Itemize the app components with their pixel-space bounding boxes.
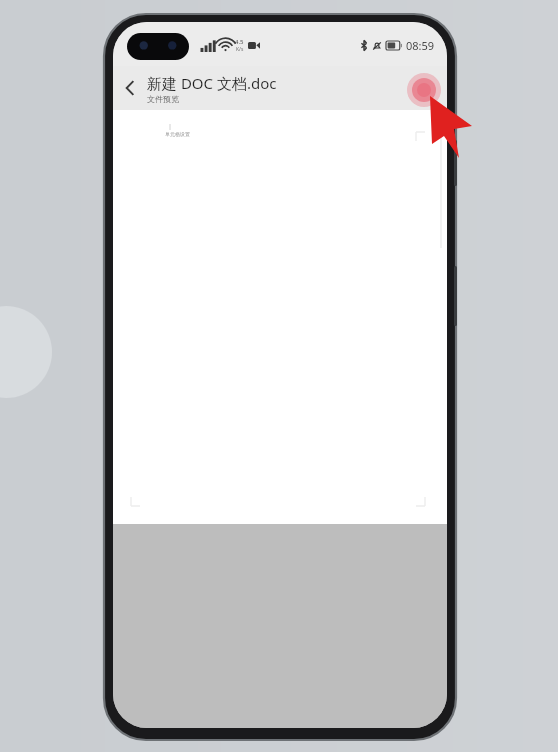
staticText: K/s [236,46,244,53]
staticText: 08:59 [406,38,435,53]
button[interactable]: Back [113,66,147,110]
staticText: 单元格设置 [165,131,190,137]
staticText: 文件预览 [147,94,179,104]
staticText: 4.5 [235,38,244,46]
staticText: 新建 DOC 文档.doc [147,73,277,93]
